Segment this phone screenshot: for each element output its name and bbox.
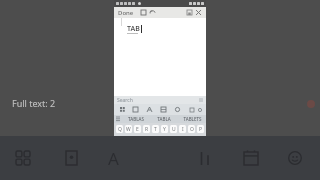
staticText: T xyxy=(154,126,157,133)
staticText: TAB xyxy=(127,24,140,34)
button[interactable]: Calendar xyxy=(240,147,262,169)
button[interactable]: Tool 1 xyxy=(129,104,142,115)
staticText: P xyxy=(199,126,203,133)
button[interactable]: Profile xyxy=(284,147,306,169)
button[interactable]: Gallery xyxy=(60,147,82,169)
button[interactable]: Settings xyxy=(196,106,204,114)
button[interactable]: Done xyxy=(117,8,135,18)
button[interactable]: Y xyxy=(161,125,168,133)
button[interactable]: All apps xyxy=(12,147,34,169)
button[interactable]: Search xyxy=(117,97,203,103)
button[interactable]: Save xyxy=(185,8,194,17)
button[interactable]: Tool 4 xyxy=(170,104,184,115)
button[interactable]: I xyxy=(179,125,186,133)
button[interactable]: TAB xyxy=(114,18,206,96)
staticText: O xyxy=(190,126,194,133)
staticText: Y xyxy=(163,126,166,133)
button[interactable]: E xyxy=(134,125,141,133)
staticText: U xyxy=(172,126,176,133)
button[interactable]: TABLETS xyxy=(178,115,206,123)
staticText: E xyxy=(136,126,139,133)
staticText: Search xyxy=(117,97,133,103)
button[interactable]: R xyxy=(143,125,150,133)
button[interactable]: W xyxy=(125,125,132,133)
staticText: Done xyxy=(118,9,134,17)
staticText: TABLETS xyxy=(183,116,202,122)
button[interactable]: Tool 0 xyxy=(116,104,129,115)
button[interactable]: Fonts xyxy=(102,147,124,169)
button[interactable]: Tool 3 xyxy=(156,104,170,115)
staticText: ?123 xyxy=(116,160,125,165)
staticText: Q xyxy=(118,126,122,133)
button[interactable]: Tool 2 xyxy=(142,104,156,115)
button[interactable]: P xyxy=(197,125,204,133)
staticText: Full text: 2 xyxy=(12,97,56,109)
button[interactable]: T xyxy=(152,125,159,133)
button[interactable]: Enter xyxy=(189,158,204,166)
button[interactable]: More options xyxy=(188,106,196,114)
button[interactable]: Insert image xyxy=(139,8,148,17)
staticText: TABLAS xyxy=(128,116,144,122)
staticText: I xyxy=(182,126,184,133)
button[interactable]: Stats xyxy=(194,147,216,169)
button[interactable]: Close xyxy=(194,8,203,17)
button[interactable]: U xyxy=(170,125,177,133)
staticText: TABLA xyxy=(157,116,171,122)
button[interactable]: Q xyxy=(116,125,123,133)
staticText: W xyxy=(126,126,131,133)
button[interactable]: Undo xyxy=(148,8,157,17)
button[interactable]: O xyxy=(188,125,195,133)
button[interactable]: Backspace xyxy=(193,147,204,155)
button[interactable]: Menu xyxy=(114,115,122,123)
button[interactable]: ?123 xyxy=(116,158,125,166)
button[interactable]: Full text: 2 xyxy=(12,97,56,109)
button[interactable]: TABLA xyxy=(150,115,178,123)
staticText: R xyxy=(145,126,149,133)
staticText: A xyxy=(108,147,119,169)
button[interactable]: TABLAS xyxy=(122,115,150,123)
